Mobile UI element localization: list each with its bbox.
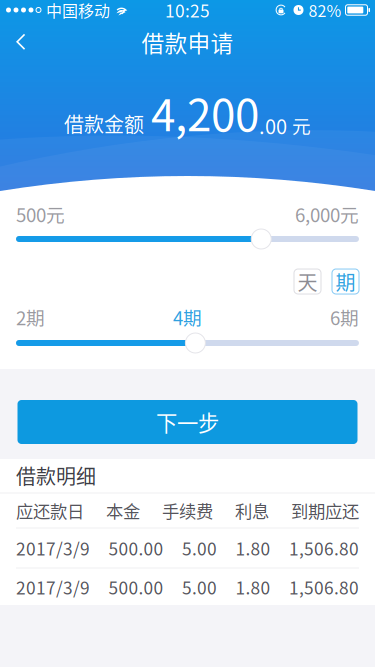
staticText: 5.00 xyxy=(182,535,217,561)
staticText: 1.80 xyxy=(235,574,270,600)
staticText: 中国移动 xyxy=(46,0,110,22)
staticText: 应还款日 xyxy=(16,498,84,523)
staticText: 利息 xyxy=(235,498,269,523)
staticText: 手续费 xyxy=(162,498,213,523)
staticText: 天 xyxy=(297,267,317,296)
staticText: 1,506.80 xyxy=(289,574,359,600)
staticText: 1,506.80 xyxy=(289,535,359,561)
staticText: 10:25 xyxy=(165,0,210,23)
staticText: 5.00 xyxy=(182,574,217,600)
button[interactable]: 期 xyxy=(332,269,359,294)
staticText: 82% xyxy=(308,0,341,22)
staticText: 1.80 xyxy=(235,535,270,561)
staticText: 借款明细 xyxy=(16,461,96,490)
staticText: 下一步 xyxy=(156,407,219,437)
staticText: 到期应还 xyxy=(291,498,359,523)
staticText: 500元 xyxy=(16,200,65,227)
staticText: 500.00 xyxy=(108,574,163,600)
staticText: 2017/3/9 xyxy=(16,535,90,561)
button[interactable]: Back xyxy=(0,22,42,62)
staticText: .00 xyxy=(259,111,287,140)
staticText: 2期 xyxy=(16,303,45,330)
staticText: 4期 xyxy=(173,303,202,330)
staticText: 元 xyxy=(292,112,311,139)
button[interactable]: 天 xyxy=(294,269,321,294)
staticText: 借款金额 xyxy=(64,109,144,138)
staticText: 4,200 xyxy=(151,80,259,144)
staticText: 本金 xyxy=(106,498,140,523)
staticText: 6期 xyxy=(330,303,359,330)
button[interactable]: 下一步 xyxy=(17,400,357,444)
staticText: 借款申请 xyxy=(141,26,233,58)
staticText: 期 xyxy=(335,267,355,296)
staticText: 500.00 xyxy=(108,535,163,561)
staticText: 6,000元 xyxy=(295,200,359,227)
staticText: 2017/3/9 xyxy=(16,574,90,600)
